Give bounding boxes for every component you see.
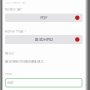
button[interactable]: null [5, 78, 82, 87]
staticText: IB3DHPV2 [35, 37, 53, 42]
staticText: null [7, 81, 13, 84]
staticText: Nombre SAP [5, 8, 22, 11]
staticText: DOCUMENTO SAP [5, 1, 27, 4]
staticText: asesoramiento@subastas.cat.cc [5, 60, 43, 63]
staticText: PDF [40, 15, 47, 20]
staticText: HOLD [5, 72, 12, 75]
button[interactable]: PDF [5, 13, 82, 22]
staticText: Archivo Phase 1 [5, 30, 27, 33]
staticText: Medio [5, 52, 14, 55]
button[interactable]: IB3DHPV2 [5, 35, 82, 44]
